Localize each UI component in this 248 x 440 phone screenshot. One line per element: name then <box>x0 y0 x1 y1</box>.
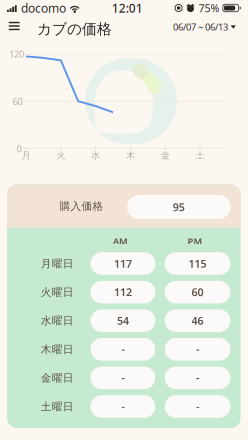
staticText: - <box>196 342 199 356</box>
staticText: 木 <box>126 150 135 161</box>
staticText: 金曜日 <box>41 371 74 384</box>
button[interactable]: 115 <box>165 252 230 275</box>
staticText: 12:01 <box>112 0 143 16</box>
button[interactable]: 95 <box>127 195 230 219</box>
staticText: 54 <box>117 314 129 328</box>
staticText: 火 <box>56 150 65 161</box>
button[interactable]: - <box>90 395 155 418</box>
staticText: 0 <box>16 142 21 155</box>
staticText: - <box>121 399 124 414</box>
button[interactable]: Menu <box>3 16 25 36</box>
staticText: 60 <box>12 95 22 107</box>
staticText: PM <box>188 235 203 247</box>
button[interactable]: 46 <box>165 309 230 332</box>
staticText: - <box>121 371 124 385</box>
button[interactable]: 112 <box>90 281 155 303</box>
staticText: 火曜日 <box>41 286 74 299</box>
button[interactable]: - <box>165 395 230 418</box>
button[interactable]: - <box>165 338 230 361</box>
staticText: 112 <box>114 285 132 299</box>
staticText: 月曜日 <box>41 257 74 270</box>
staticText: 土 <box>195 150 204 161</box>
staticText: 木曜日 <box>41 343 74 356</box>
staticText: 06/07 ~ 06/13 <box>173 21 228 33</box>
button[interactable]: - <box>90 367 155 389</box>
staticText: 水曜日 <box>41 314 74 327</box>
staticText: 60 <box>192 285 204 299</box>
staticText: 75% <box>198 1 219 15</box>
staticText: 46 <box>192 314 204 328</box>
staticText: docomo <box>21 0 66 16</box>
staticText: - <box>121 342 124 356</box>
button[interactable]: 60 <box>165 281 230 303</box>
staticText: 水 <box>91 150 100 161</box>
staticText: 月 <box>21 150 30 161</box>
staticText: カブの価格 <box>37 20 112 38</box>
staticText: 120 <box>9 48 24 60</box>
button[interactable]: 117 <box>90 252 155 275</box>
staticText: AM <box>113 235 128 247</box>
staticText: 金 <box>161 150 170 161</box>
staticText: 土曜日 <box>41 400 74 413</box>
staticText: 購入価格 <box>59 200 103 213</box>
button[interactable]: 06/07 ~ 06/13 <box>136 18 236 36</box>
staticText: 117 <box>114 256 132 271</box>
staticText: 95 <box>173 200 185 214</box>
button[interactable]: - <box>165 367 230 389</box>
button[interactable]: - <box>90 338 155 361</box>
staticText: - <box>196 399 199 414</box>
button[interactable]: 54 <box>90 309 155 332</box>
staticText: 115 <box>189 256 207 271</box>
staticText: - <box>196 371 199 385</box>
